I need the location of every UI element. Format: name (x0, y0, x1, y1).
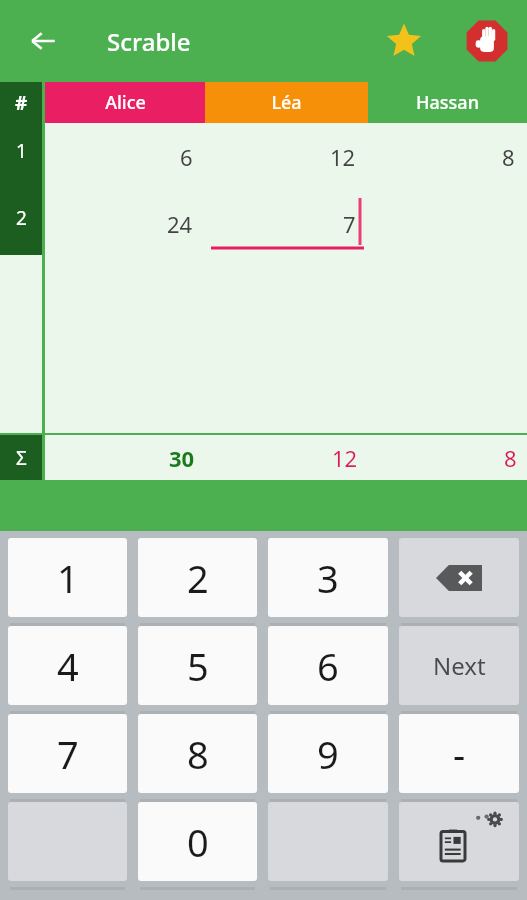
staticText: 30 (169, 443, 195, 473)
button[interactable]: 7 (8, 714, 127, 793)
button[interactable]: 8 (368, 123, 527, 190)
staticText: 0 (187, 816, 209, 868)
button[interactable]: 12 (205, 435, 368, 480)
staticText: 24 (167, 209, 193, 239)
button[interactable]: Back (20, 18, 66, 64)
button[interactable]: Léa (205, 82, 368, 123)
button[interactable]: 8 (368, 435, 527, 480)
button[interactable]: Clipboard settings (399, 802, 519, 881)
staticText: 12 (332, 443, 358, 473)
staticText: 2 (16, 205, 27, 231)
button[interactable]: Next (399, 626, 519, 705)
button[interactable]: 24 (45, 190, 205, 257)
staticText: 8 (187, 728, 209, 780)
staticText: 5 (187, 640, 209, 692)
staticText: Hassan (416, 90, 479, 115)
staticText: 7 (343, 209, 356, 239)
staticText: 6 (180, 142, 193, 172)
button[interactable]: Hassan (368, 82, 527, 123)
button[interactable]: 1 (8, 538, 127, 617)
button[interactable]: Σ (0, 435, 42, 480)
button[interactable]: 4 (8, 626, 127, 705)
button[interactable]: 8 (138, 714, 257, 793)
button[interactable]: Favorite (378, 15, 430, 67)
button[interactable]: # (0, 82, 42, 123)
staticText: 1 (57, 552, 79, 604)
button[interactable]: 7 (205, 190, 368, 257)
button[interactable]: 30 (45, 435, 205, 480)
staticText: - (453, 728, 466, 780)
staticText: 1 (16, 138, 27, 164)
button[interactable]: 0 (138, 802, 257, 881)
staticText: 8 (502, 142, 515, 172)
staticText: 2 (187, 552, 209, 604)
staticText: 6 (317, 640, 339, 692)
button[interactable]: Stop (459, 13, 515, 69)
staticText: # (15, 90, 28, 116)
staticText: Next (433, 649, 486, 682)
button[interactable]: 2 (138, 538, 257, 617)
staticText: Léa (271, 90, 302, 115)
button[interactable]: 3 (268, 538, 388, 617)
button[interactable]: Backspace (399, 538, 519, 617)
staticText: Scrable (107, 25, 191, 58)
staticText: Σ (16, 445, 27, 471)
staticText: Alice (105, 90, 146, 115)
button[interactable]: 6 (45, 123, 205, 190)
staticText: 4 (57, 640, 79, 692)
staticText: 3 (317, 552, 339, 604)
staticText: 7 (57, 728, 79, 780)
button[interactable]: - (399, 714, 519, 793)
button[interactable]: 9 (268, 714, 388, 793)
staticText: 8 (504, 443, 517, 473)
button[interactable]: Alice (45, 82, 205, 123)
button[interactable]: 12 (205, 123, 368, 190)
button[interactable]: 5 (138, 626, 257, 705)
staticText: 12 (330, 142, 356, 172)
button[interactable]: 6 (268, 626, 388, 705)
staticText: 9 (317, 728, 339, 780)
